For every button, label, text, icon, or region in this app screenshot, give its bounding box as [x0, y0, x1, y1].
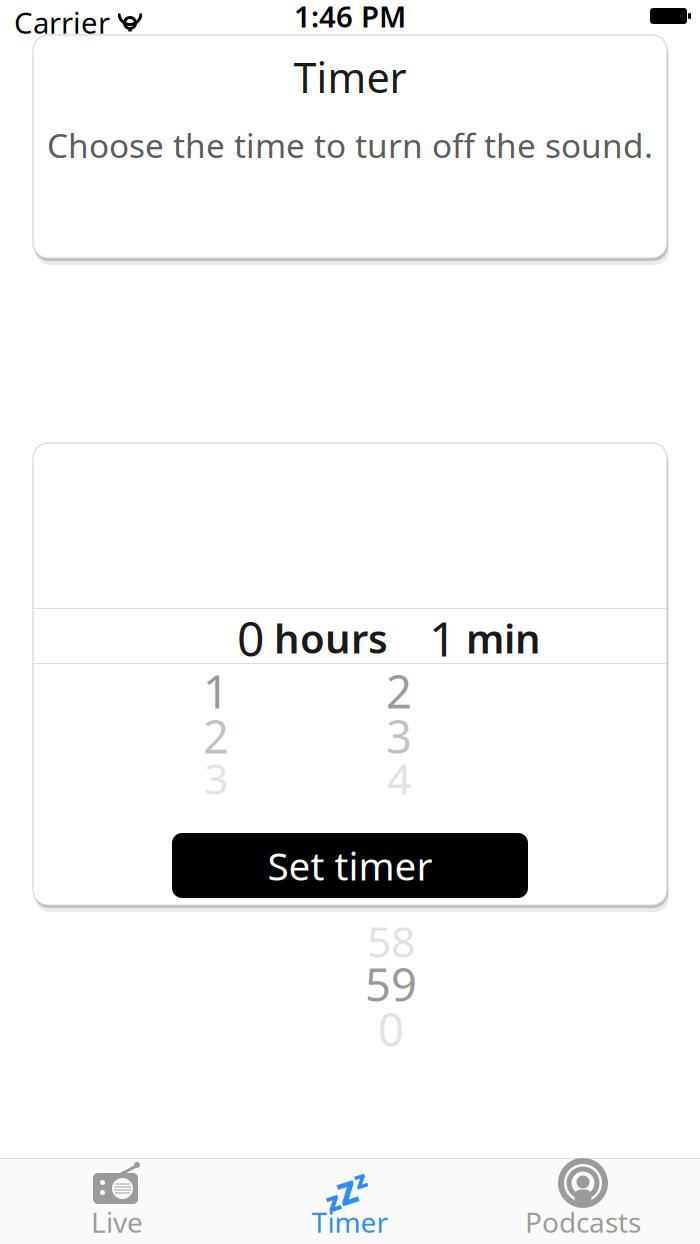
staticText: 1: [203, 661, 229, 721]
staticText: 1: [429, 606, 456, 670]
staticText: 0: [378, 999, 404, 1059]
staticText: 59: [365, 954, 417, 1014]
staticText: Carrier: [14, 3, 110, 42]
staticText: z: [326, 1183, 340, 1218]
staticText: 2: [203, 706, 229, 766]
staticText: min: [456, 611, 541, 664]
staticText: 58: [367, 913, 415, 969]
staticText: 3: [386, 706, 412, 766]
staticText: 3: [204, 750, 228, 806]
staticText: Set timer: [267, 840, 432, 891]
staticText: 2: [386, 661, 412, 721]
staticText: hours: [264, 611, 388, 664]
staticText: Podcasts: [525, 1203, 641, 1241]
staticText: Live: [91, 1203, 143, 1241]
staticText: Timer: [293, 50, 406, 104]
staticText: Choose the time to turn off the sound.: [47, 123, 653, 167]
button[interactable]: z: [233, 1159, 466, 1243]
staticText: 0: [237, 606, 264, 670]
staticText: Z: [338, 1172, 357, 1213]
button[interactable]: Set timer: [172, 833, 528, 898]
button[interactable]: Podcasts: [466, 1159, 699, 1243]
staticText: 4: [387, 750, 411, 806]
staticText: z: [354, 1163, 366, 1195]
button[interactable]: Live: [0, 1159, 233, 1243]
staticText: Timer: [311, 1203, 388, 1241]
staticText: 1:46 PM: [294, 0, 406, 35]
